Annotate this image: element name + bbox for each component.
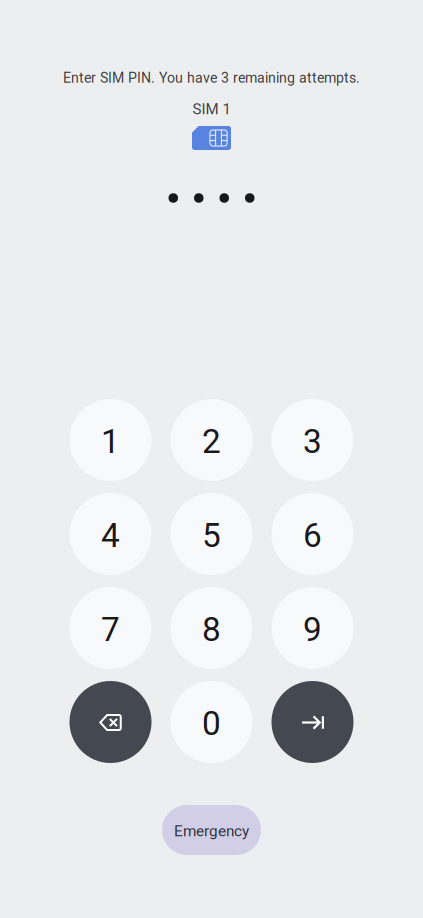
button[interactable]: 1 — [69, 399, 151, 481]
button[interactable]: 2 — [170, 399, 252, 481]
staticText: SIM 1 — [192, 100, 230, 118]
staticText: 1 — [101, 422, 120, 461]
staticText: 0 — [202, 704, 221, 743]
staticText: 9 — [303, 610, 322, 649]
button[interactable]: Emergency — [162, 805, 261, 855]
staticText: 3 — [303, 422, 322, 461]
staticText: Enter SIM PIN. You have 3 remaining atte… — [63, 70, 360, 86]
button[interactable]: 0 — [170, 681, 252, 763]
button[interactable]: Delete — [69, 681, 151, 763]
button[interactable]: 3 — [271, 399, 353, 481]
button[interactable]: 9 — [271, 587, 353, 669]
staticText: 6 — [303, 516, 322, 555]
button[interactable]: 6 — [271, 493, 353, 575]
staticText: 7 — [101, 610, 120, 649]
staticText: 2 — [202, 422, 221, 461]
staticText: 8 — [202, 610, 221, 649]
button[interactable]: Submit — [271, 681, 353, 763]
staticText: 4 — [101, 516, 120, 555]
button[interactable]: 8 — [170, 587, 252, 669]
button[interactable]: 5 — [170, 493, 252, 575]
button[interactable]: 4 — [69, 493, 151, 575]
staticText: 5 — [202, 516, 221, 555]
staticText: Emergency — [174, 822, 249, 840]
button[interactable]: 7 — [69, 587, 151, 669]
